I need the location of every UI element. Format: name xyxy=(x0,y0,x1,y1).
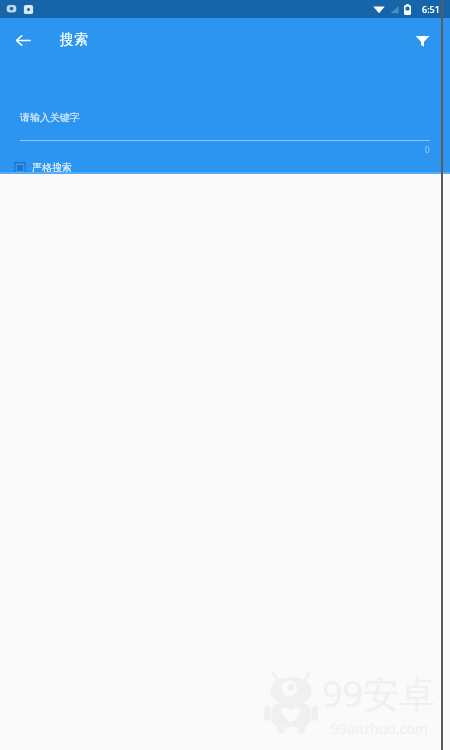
button[interactable]: Back xyxy=(6,23,40,57)
staticText: 6:51 xyxy=(422,3,440,15)
staticText: 请输入关键字 xyxy=(20,111,80,124)
staticText: 严格搜索 xyxy=(32,161,72,174)
staticText: 0 xyxy=(425,144,430,155)
staticText: 搜索 xyxy=(60,31,88,49)
staticText: 99安卓 xyxy=(322,669,436,718)
button[interactable]: Filter xyxy=(405,23,439,57)
button[interactable]: 严格搜索 xyxy=(14,161,72,174)
staticText: 99anzhuo.com xyxy=(331,719,428,738)
button[interactable]: 请输入关键字 xyxy=(20,111,430,141)
